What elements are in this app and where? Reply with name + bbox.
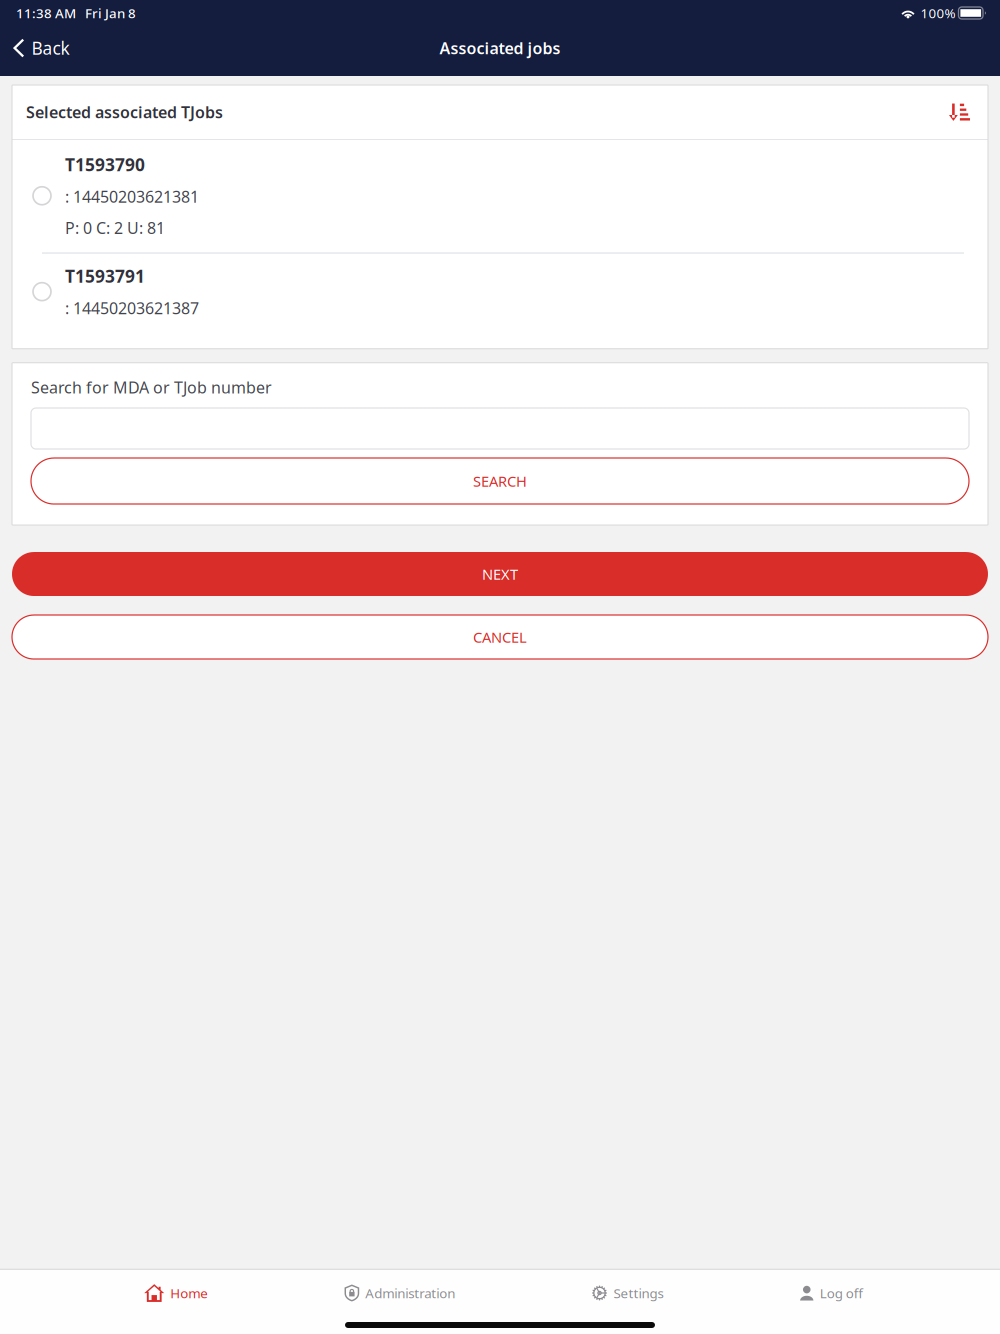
button[interactable]: SEARCH (31, 458, 969, 504)
button[interactable]: Sort (944, 98, 975, 126)
staticText: 100% (920, 4, 955, 22)
staticText: Log off (820, 1284, 863, 1302)
staticText: Fri Jan 8 (85, 4, 136, 22)
button[interactable]: CANCEL (12, 615, 988, 659)
staticText: T1593790 (65, 153, 145, 176)
staticText: : 14450203621381 (65, 186, 199, 207)
staticText: Home (170, 1284, 208, 1302)
staticText: Back (31, 36, 69, 59)
staticText: CANCEL (473, 627, 527, 647)
staticText: P: 0 C: 2 U: 81 (65, 217, 165, 238)
button[interactable]: Settings (591, 1278, 663, 1308)
button[interactable]: T1593791 (12, 253, 988, 349)
staticText: T1593791 (65, 264, 145, 287)
button[interactable]: Home (144, 1278, 208, 1308)
staticText: Search for MDA or TJob number (31, 377, 272, 398)
button[interactable]: Log off (800, 1278, 863, 1308)
staticText: Settings (613, 1284, 663, 1302)
staticText: NEXT (482, 564, 518, 584)
button[interactable]: T1593790 (12, 140, 988, 252)
staticText: Associated jobs (439, 37, 560, 59)
staticText: SEARCH (473, 471, 527, 491)
button[interactable]: Administration (344, 1278, 455, 1308)
staticText: Administration (365, 1284, 455, 1302)
staticText: 11:38 AM (16, 4, 76, 22)
staticText: Selected associated TJobs (26, 101, 223, 123)
button[interactable]: NEXT (12, 552, 988, 596)
staticText: : 14450203621387 (65, 297, 199, 319)
button[interactable]: Back (0, 32, 79, 69)
